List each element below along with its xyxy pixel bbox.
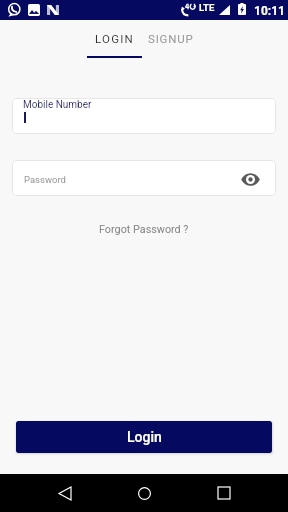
staticText: Password [24,174,66,185]
button[interactable]: Recent apps [200,474,248,512]
staticText: SIGNUP [148,32,194,45]
button[interactable]: Show password [237,166,263,192]
staticText: LOGIN [95,32,134,45]
staticText: 10:11 [254,4,285,18]
button[interactable]: Back [41,474,89,512]
button[interactable]: Mobile Number [12,98,276,134]
button[interactable]: SIGNUP [146,20,196,60]
button[interactable]: Forgot Password ? [99,221,189,234]
staticText: Login [127,429,162,445]
button[interactable]: Password [12,160,276,196]
button[interactable]: LOGIN [87,20,142,60]
staticText: LTE [199,2,215,13]
button[interactable]: Home [120,474,168,512]
staticText: Mobile Number [23,99,92,111]
button[interactable]: Login [16,421,272,453]
